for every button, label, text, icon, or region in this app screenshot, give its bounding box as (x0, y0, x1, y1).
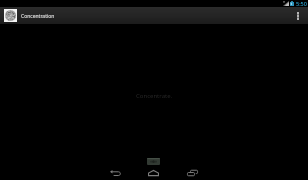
button[interactable]: Recent apps (173, 167, 212, 179)
staticText: Concentration (21, 13, 55, 20)
button[interactable]: Home (134, 167, 173, 179)
button[interactable]: Back (96, 167, 134, 179)
staticText: 5:50 (296, 0, 307, 7)
button[interactable]: Concentration (4, 9, 55, 22)
button[interactable]: More options (287, 7, 308, 24)
staticText: Concentrate. (136, 92, 173, 100)
button[interactable]: Keyboard (147, 158, 160, 165)
